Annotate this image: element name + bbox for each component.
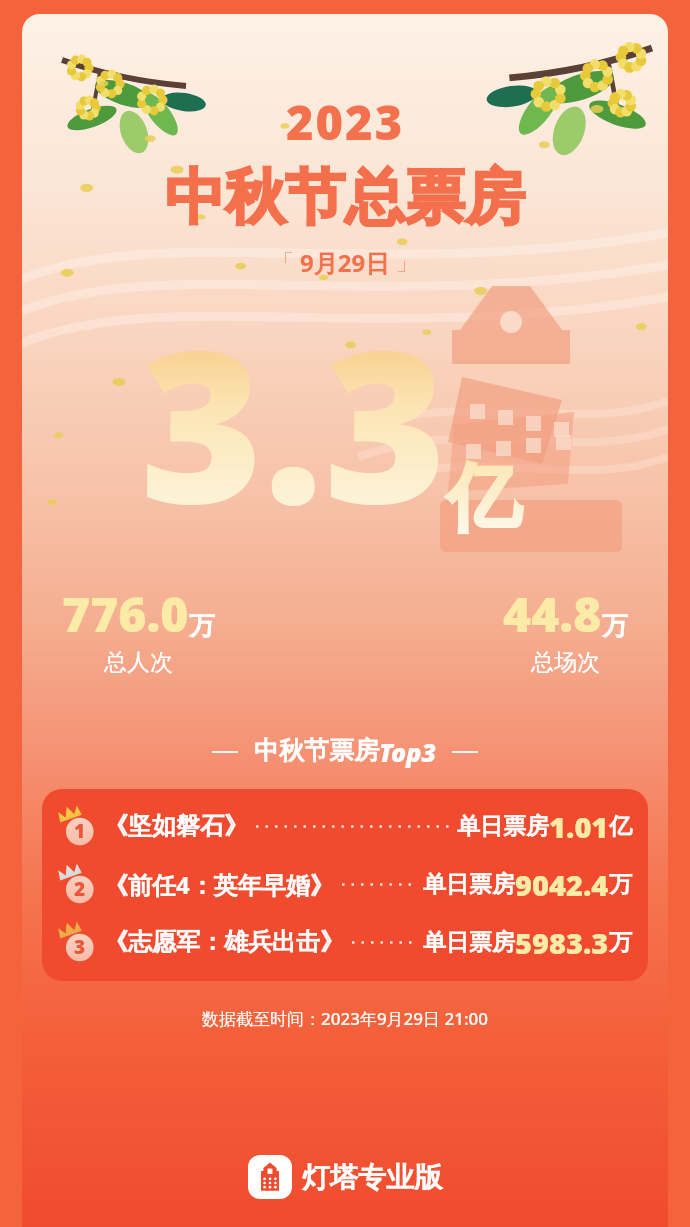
staticText: 《志愿军：雄兵出击》: [104, 927, 344, 957]
staticText: 1: [74, 818, 86, 844]
staticText: 单日票房: [457, 812, 549, 841]
staticText: 2023: [286, 90, 405, 154]
staticText: 《坚如磐石》: [104, 811, 248, 841]
staticText: 单日票房: [423, 928, 515, 957]
staticText: 9042.4: [515, 865, 609, 904]
staticText: 总场次: [531, 648, 600, 677]
staticText: 5983.3: [515, 923, 609, 962]
staticText: 」: [396, 249, 418, 277]
staticText: 44.8: [503, 581, 602, 646]
staticText: 3: [74, 934, 86, 960]
staticText: 亿: [609, 812, 632, 841]
staticText: 776.0: [62, 581, 189, 646]
button[interactable]: 灯塔专业版: [244, 1151, 446, 1203]
staticText: 中秋节总票房: [165, 160, 525, 236]
staticText: 2: [74, 876, 86, 902]
staticText: 万: [189, 610, 215, 643]
staticText: 总人次: [104, 648, 173, 677]
button[interactable]: 1: [42, 797, 648, 855]
staticText: 「: [272, 249, 294, 277]
staticText: 《前任4：英年早婚》: [104, 868, 334, 901]
staticText: 亿: [447, 452, 521, 545]
button[interactable]: 3: [42, 913, 648, 971]
staticText: 灯塔专业版: [302, 1160, 442, 1195]
staticText: 数据截至时间：2023年9月29日 21:00: [202, 1007, 489, 1030]
staticText: 中秋节票房: [254, 735, 379, 766]
staticText: 万: [602, 610, 628, 643]
staticText: 9月29日: [300, 246, 390, 279]
staticText: 万: [609, 928, 632, 957]
button[interactable]: 2: [42, 855, 648, 913]
staticText: 单日票房: [423, 870, 515, 899]
staticText: 1.01: [549, 807, 609, 846]
staticText: Top3: [379, 735, 436, 769]
staticText: 3.3: [140, 279, 447, 565]
staticText: 万: [609, 870, 632, 899]
